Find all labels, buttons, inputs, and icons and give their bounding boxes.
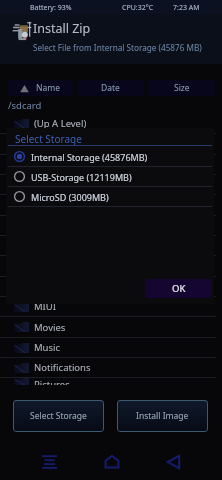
staticText: Battery: 93% [30, 3, 72, 13]
button[interactable]: DCIM [0, 195, 222, 216]
staticText: Select Storage [30, 410, 87, 422]
staticText: Size [174, 82, 190, 94]
staticText: Install Image [136, 410, 189, 422]
staticText: Date [101, 82, 120, 94]
staticText: Movies [34, 321, 66, 334]
staticText: Music [34, 341, 61, 354]
staticText: Select File from Internal Storage (45876… [33, 42, 202, 53]
staticText: Notifications [34, 361, 91, 374]
button[interactable]: Music [0, 338, 222, 358]
button[interactable]: Install Image [117, 400, 208, 432]
button[interactable]: Select Storage [13, 400, 104, 432]
staticText: Name [36, 82, 60, 94]
button[interactable]: Alarms [0, 134, 222, 155]
button[interactable]: USB-Storage (12119MB) [6, 167, 214, 187]
staticText: (Up A Level) [34, 117, 87, 130]
button[interactable]: Movies [0, 317, 222, 338]
button[interactable]: Name [7, 80, 73, 96]
staticText: USB-Storage (12119MB) [31, 171, 132, 183]
staticText: /sdcard [8, 99, 42, 112]
button[interactable]: (Up A Level) [0, 114, 222, 134]
button[interactable]: Home [95, 445, 128, 478]
staticText: MIUI [34, 300, 57, 313]
staticText: DCIM [34, 199, 59, 212]
button[interactable]: MIUI [0, 297, 222, 317]
button[interactable]: MicroSD (3009MB) [6, 187, 214, 207]
staticText: Pictures [34, 378, 70, 385]
staticText: CPU:32°C [122, 3, 154, 13]
button[interactable]: Date [77, 80, 144, 96]
staticText: Install Zip [33, 20, 91, 37]
button[interactable]: Back [157, 445, 190, 478]
staticText: MicroSD (3009MB) [31, 191, 109, 203]
staticText: Select Storage [15, 132, 82, 146]
button[interactable]: Size [148, 80, 215, 96]
staticText: 7:23 AM [173, 3, 200, 13]
button[interactable]: Pictures [0, 378, 222, 385]
button[interactable]: Notifications [0, 358, 222, 378]
staticText: backups [34, 178, 72, 191]
staticText: OK [172, 282, 186, 295]
staticText: Android [34, 158, 70, 171]
button[interactable]: Internal Storage (45876MB) [6, 147, 214, 167]
button[interactable]: LOST.DIR [0, 277, 222, 297]
button[interactable]: backups [0, 175, 222, 195]
button[interactable]: Menu [33, 445, 66, 478]
button[interactable]: Android [0, 155, 222, 175]
staticText: Internal Storage (45876MB) [31, 151, 148, 163]
staticText: Alarms [34, 138, 66, 151]
button[interactable]: OK [145, 279, 212, 298]
